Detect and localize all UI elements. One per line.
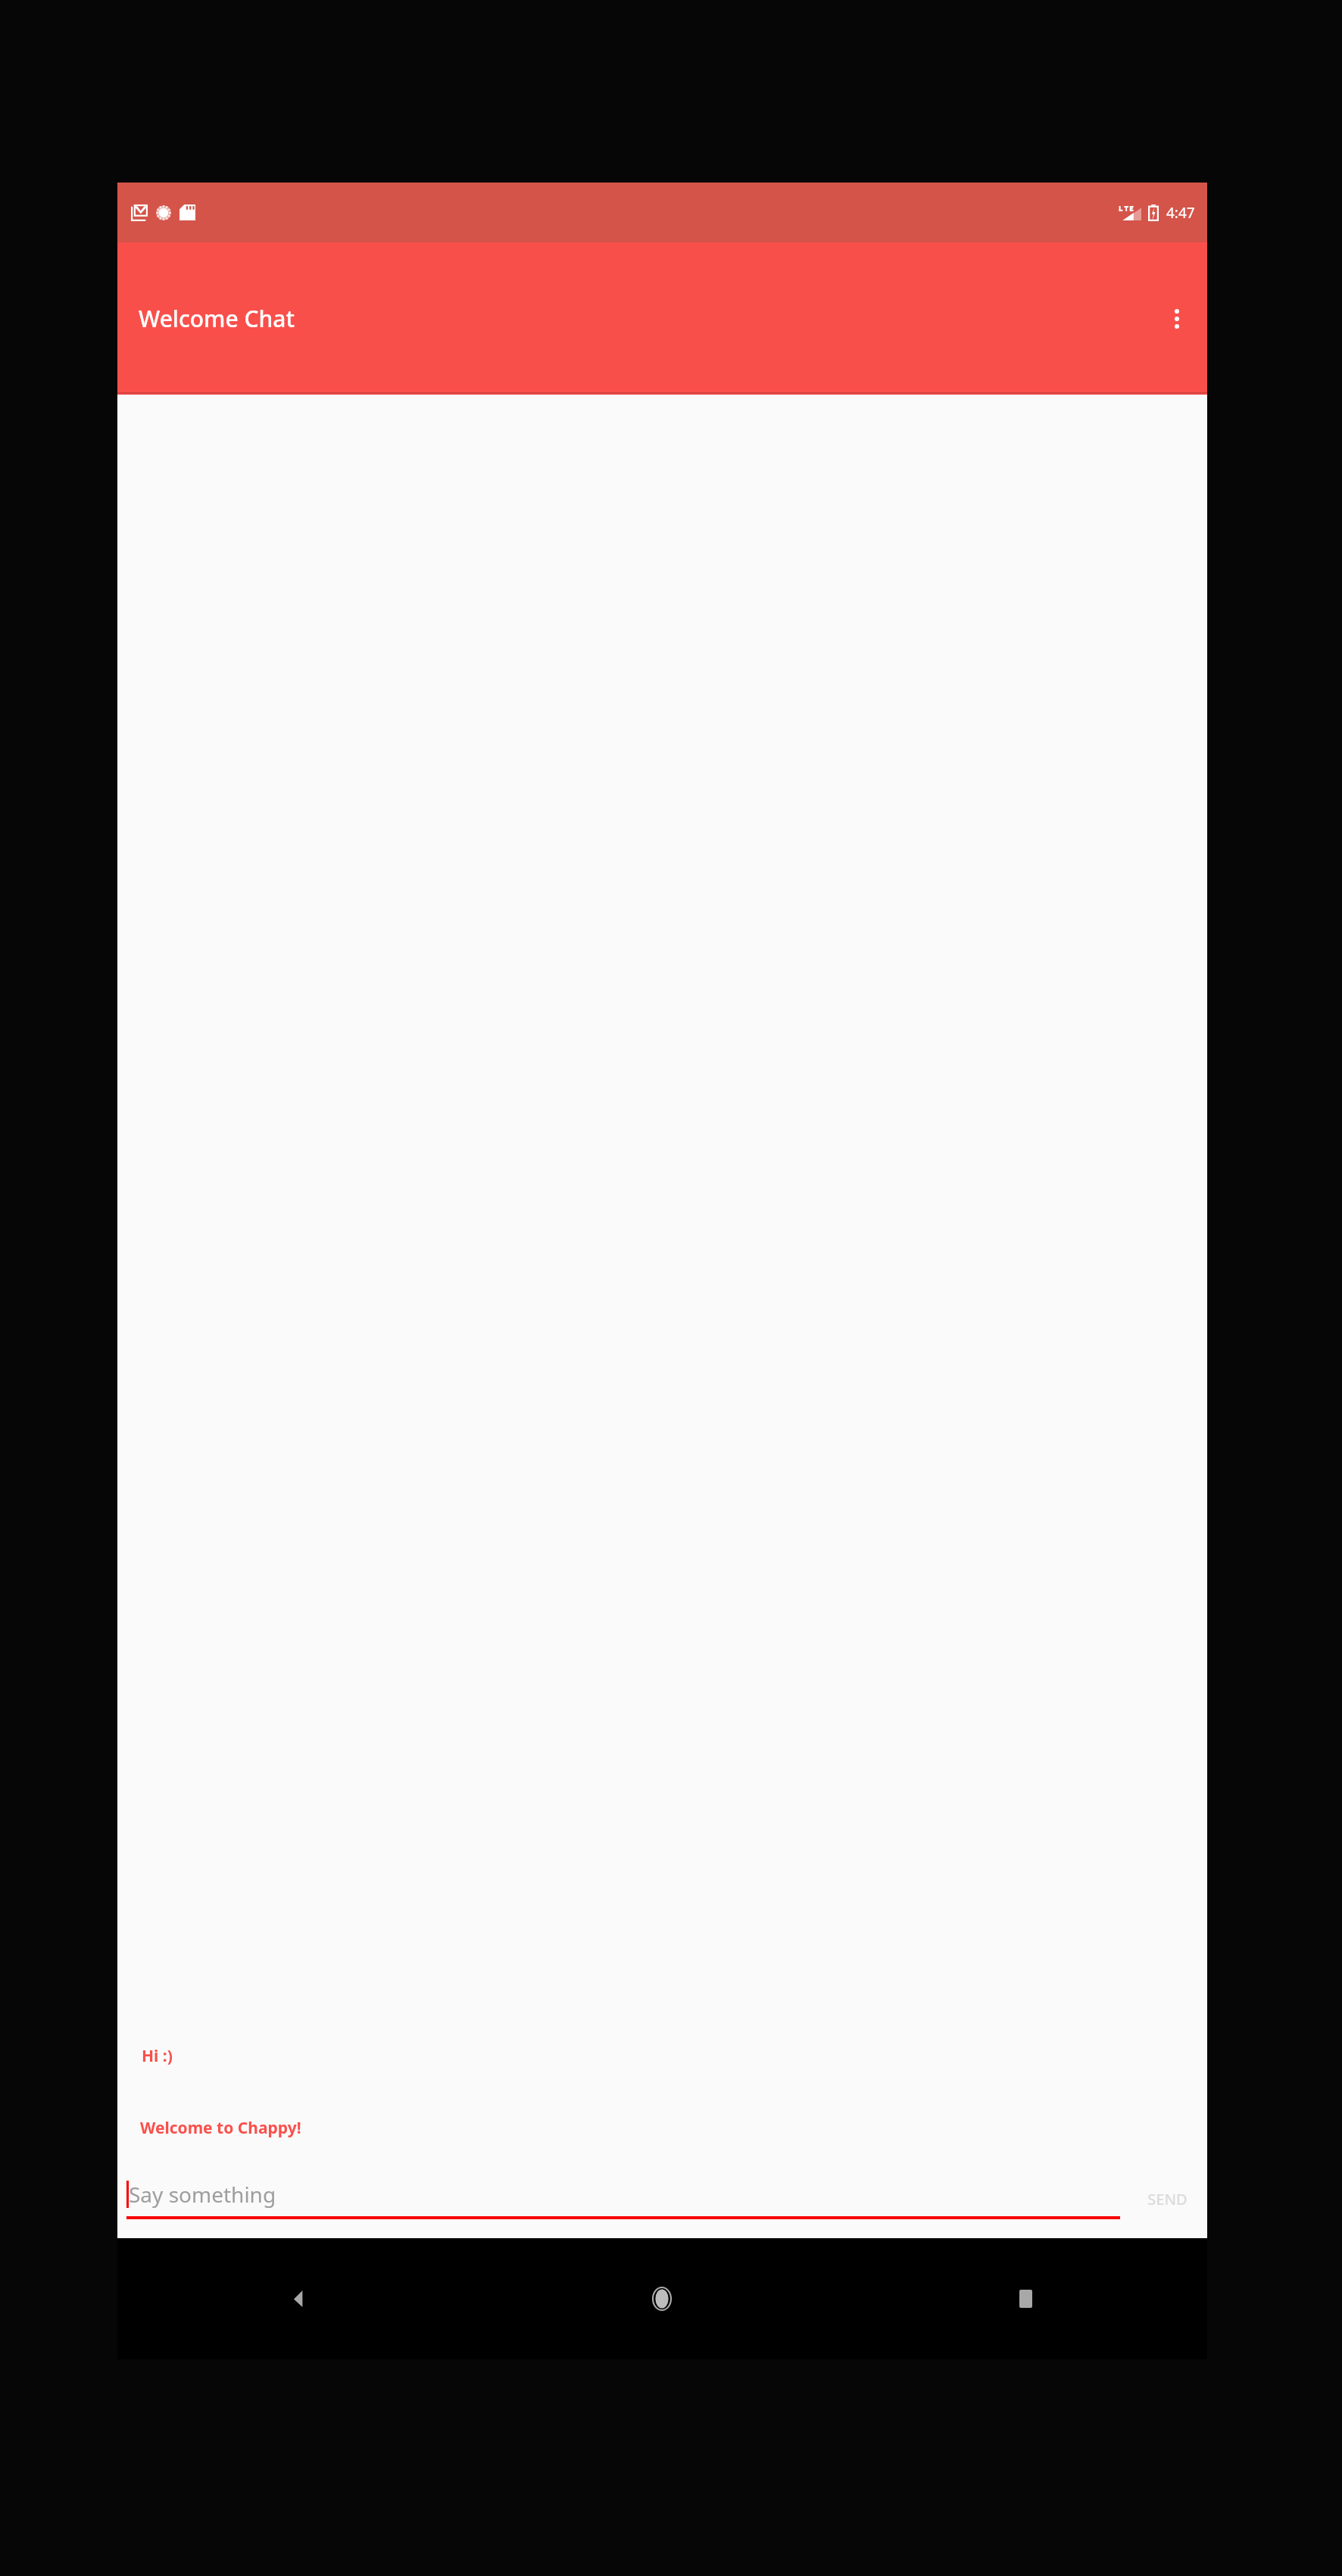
button[interactable]: Home [480, 2238, 844, 2359]
button[interactable]: Back [117, 2238, 480, 2359]
staticText: SEND [1147, 2189, 1188, 2209]
staticText: Hi :) [142, 2045, 173, 2067]
button[interactable]: More options [1159, 301, 1195, 337]
staticText: Welcome Chat [139, 303, 295, 334]
staticText: Say something [129, 2180, 276, 2209]
button[interactable]: Welcome to Chappy! [140, 2117, 1207, 2139]
staticText: Welcome to Chappy! [140, 2117, 301, 2139]
staticText: 4:47 [1166, 203, 1195, 223]
button[interactable]: SEND [1134, 2178, 1201, 2220]
button[interactable]: Recent apps [844, 2238, 1207, 2359]
button[interactable]: Hi :) [142, 2045, 1207, 2067]
button[interactable]: Say something [126, 2180, 1120, 2219]
